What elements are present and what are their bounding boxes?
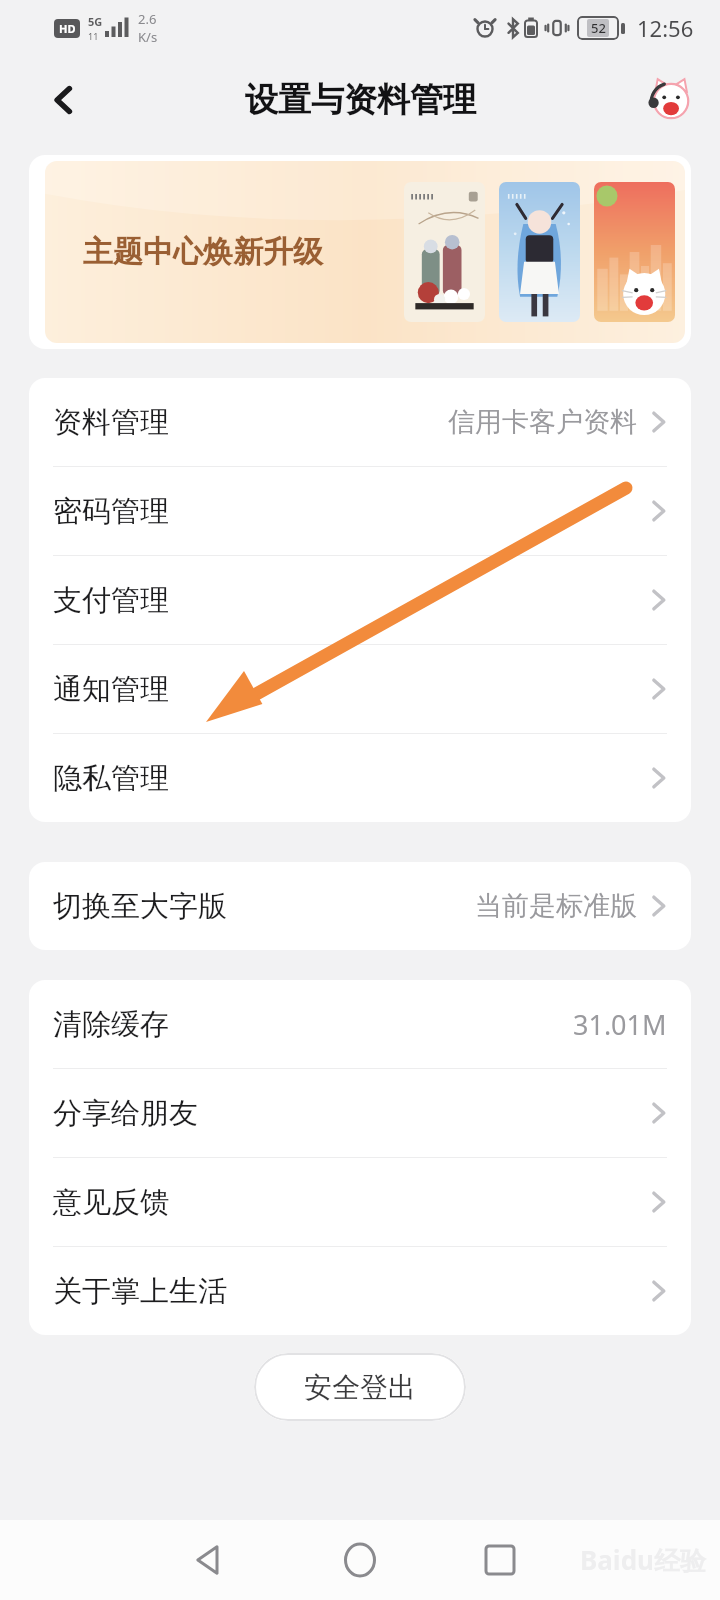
staticText: 12:56 <box>637 13 694 43</box>
button[interactable]: Back <box>34 70 94 130</box>
staticText: 分享给朋友 <box>53 1095 198 1132</box>
staticText: 通知管理 <box>53 671 169 708</box>
staticText: 31.01M <box>573 1006 667 1043</box>
staticText: 关于掌上生活 <box>53 1273 227 1310</box>
button[interactable]: 隐私管理 <box>29 734 691 822</box>
button[interactable]: 关于掌上生活 <box>29 1247 691 1335</box>
staticText: Baidu经验 <box>580 1542 706 1578</box>
staticText: HD <box>59 21 76 36</box>
button[interactable]: Home <box>324 1524 396 1596</box>
staticText: 52 <box>591 19 606 37</box>
staticText: 5G <box>88 14 103 29</box>
staticText: 切换至大字版 <box>53 888 227 925</box>
button[interactable]: 安全登出 <box>254 1353 466 1421</box>
staticText: 隐私管理 <box>53 760 169 797</box>
button[interactable]: 主题中心焕新升级 <box>29 155 691 349</box>
button[interactable]: Recent apps <box>464 1524 536 1596</box>
staticText: 信用卡客户资料 <box>448 405 637 439</box>
button[interactable]: Back <box>172 1524 244 1596</box>
staticText: 支付管理 <box>53 582 169 619</box>
staticText: 11 <box>88 30 99 42</box>
button[interactable]: Customer service <box>640 71 698 129</box>
staticText: 清除缓存 <box>53 1006 169 1043</box>
staticText: 资料管理 <box>53 404 169 441</box>
button[interactable]: 通知管理 <box>29 645 691 733</box>
button[interactable]: 支付管理 <box>29 556 691 644</box>
button[interactable]: 资料管理 <box>29 378 691 466</box>
staticText: 意见反馈 <box>53 1184 169 1221</box>
staticText: 密码管理 <box>53 493 169 530</box>
staticText: 安全登出 <box>304 1370 416 1405</box>
staticText: 当前是标准版 <box>475 889 637 923</box>
button[interactable]: 密码管理 <box>29 467 691 555</box>
button[interactable]: 切换至大字版 <box>29 862 691 950</box>
staticText: K/s <box>138 28 158 46</box>
button[interactable]: 意见反馈 <box>29 1158 691 1246</box>
staticText: 2.6 <box>138 10 157 28</box>
staticText: 主题中心焕新升级 <box>83 233 323 271</box>
button[interactable]: 清除缓存 <box>29 980 691 1068</box>
staticText: 设置与资料管理 <box>245 79 476 121</box>
button[interactable]: 分享给朋友 <box>29 1069 691 1157</box>
